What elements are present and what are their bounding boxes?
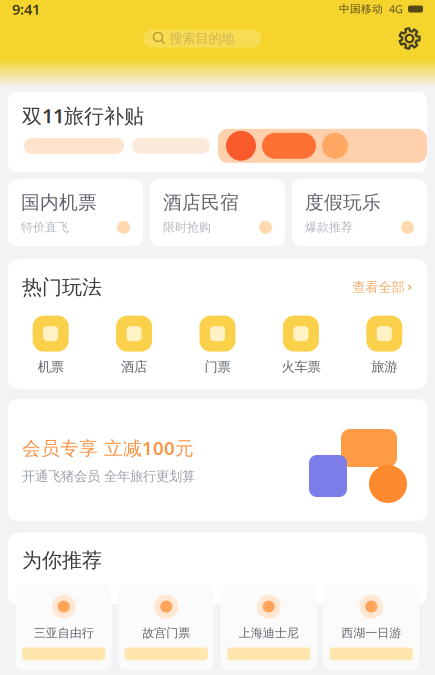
staticText: 度假玩乐 [305, 191, 381, 214]
staticText: 国内机票 [21, 191, 97, 214]
staticText: 4G [389, 2, 403, 16]
button[interactable]: 西湖一日游 [323, 585, 419, 670]
staticText: 9:41 [12, 0, 40, 19]
staticText: 查看全部 [352, 279, 404, 295]
button[interactable]: 旅游 [343, 316, 426, 375]
button[interactable]: 查看全部 [352, 279, 413, 295]
staticText: 酒店 [121, 359, 147, 375]
staticText: 热门玩法 [22, 275, 102, 300]
staticText: 限时抢购 [163, 220, 211, 235]
staticText: 开通飞猪会员 全年旅行更划算 [22, 468, 195, 485]
staticText: 旅游 [371, 359, 397, 375]
staticText: 爆款推荐 [305, 220, 353, 235]
button[interactable]: 机票 [9, 316, 92, 375]
button[interactable]: 国内机票 [8, 179, 143, 246]
staticText: 为你推荐 [22, 548, 102, 573]
button[interactable]: 三亚自由行 [16, 585, 111, 670]
button[interactable]: 搜索目的地 [143, 29, 261, 47]
staticText: 中国移动 [339, 2, 383, 15]
staticText: 机票 [38, 359, 64, 375]
button[interactable]: 上海迪士尼 [221, 585, 316, 670]
button[interactable]: Settings [393, 22, 426, 55]
button[interactable]: 门票 [176, 316, 259, 375]
button[interactable]: 度假玩乐 [292, 179, 427, 246]
staticText: 搜索目的地 [169, 30, 234, 47]
staticText: 上海迪士尼 [239, 626, 299, 640]
button[interactable]: 酒店民宿 [150, 179, 285, 246]
staticText: 特价直飞 [21, 220, 69, 235]
staticText: 三亚自由行 [34, 626, 94, 640]
button[interactable]: 火车票 [259, 316, 343, 375]
staticText: 火车票 [281, 359, 320, 375]
staticText: 故宫门票 [142, 626, 190, 640]
staticText: 门票 [204, 359, 230, 375]
staticText: 双11旅行补贴 [22, 102, 144, 129]
staticText: 会员专享 立减100元 [22, 435, 194, 460]
button[interactable]: 双11旅行补贴 [8, 92, 427, 172]
button[interactable]: 酒店 [92, 316, 176, 375]
staticText: 酒店民宿 [163, 191, 239, 214]
button[interactable]: 故宫门票 [118, 585, 214, 670]
button[interactable]: 会员专享 立减100元 [8, 399, 427, 521]
staticText: 西湖一日游 [341, 626, 401, 640]
